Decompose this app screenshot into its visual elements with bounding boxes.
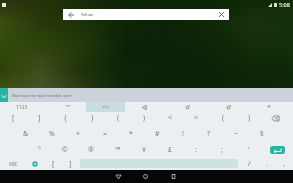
button[interactable]: ?	[196, 126, 222, 142]
staticText: ]	[38, 113, 41, 123]
button[interactable]: Home	[135, 170, 155, 183]
staticText: 5:08	[279, 1, 290, 8]
button[interactable]: >	[183, 110, 209, 126]
staticText: ?	[207, 129, 211, 139]
button[interactable]: )	[236, 110, 262, 126]
staticText: )	[143, 113, 146, 123]
button[interactable]: ~	[223, 126, 249, 142]
staticText: :	[195, 145, 197, 155]
button[interactable]: ™	[105, 142, 131, 158]
other: Clear	[219, 12, 224, 17]
button[interactable]: Settings	[25, 156, 45, 172]
button[interactable]: ¥	[131, 142, 157, 158]
staticText: '	[248, 145, 250, 155]
button[interactable]: Back	[108, 170, 128, 183]
button[interactable]: °	[26, 142, 52, 158]
button[interactable]: }	[79, 110, 105, 126]
button[interactable]: Backspace	[267, 111, 283, 125]
staticText: ¥	[142, 145, 147, 155]
staticText: (	[222, 113, 225, 123]
staticText: !	[182, 129, 184, 139]
button[interactable]: :	[183, 142, 209, 158]
button[interactable]: {	[52, 110, 78, 126]
button[interactable]: %	[39, 126, 65, 142]
staticText: *	[129, 129, 133, 139]
button[interactable]: Enter	[270, 146, 285, 154]
button[interactable]: #	[144, 126, 170, 142]
staticText: Yellow	[81, 12, 93, 17]
button[interactable]: Stickers	[126, 102, 162, 112]
button[interactable]: Voice input	[0, 88, 8, 102]
button[interactable]: +	[251, 102, 287, 112]
staticText: ©	[62, 145, 68, 155]
button[interactable]: ,	[276, 156, 292, 172]
button[interactable]: ;	[209, 142, 235, 158]
staticText: ABC	[9, 161, 18, 167]
staticText: ;	[221, 145, 223, 155]
button[interactable]: !	[170, 126, 196, 142]
button[interactable]: [	[0, 110, 26, 126]
staticText: >	[194, 113, 199, 123]
staticText: °	[38, 145, 41, 155]
staticText: +	[76, 129, 81, 139]
button[interactable]: )	[131, 110, 157, 126]
staticText: %	[49, 129, 55, 139]
button[interactable]: ©	[52, 142, 78, 158]
staticText: 1123	[16, 104, 28, 111]
staticText: }	[91, 113, 94, 123]
staticText: +	[267, 102, 272, 112]
button[interactable]: £	[157, 142, 183, 158]
button[interactable]: 1123	[4, 102, 40, 112]
staticText: “”	[66, 103, 71, 111]
button[interactable]: +	[65, 126, 91, 142]
staticText: (	[117, 113, 120, 123]
button[interactable]: .	[258, 156, 276, 172]
button[interactable]: §	[249, 126, 275, 142]
button[interactable]: &	[13, 126, 39, 142]
button[interactable]: Emoji	[210, 102, 246, 112]
button[interactable]: <>	[87, 102, 123, 112]
button[interactable]: <	[157, 110, 183, 126]
button[interactable]: Recent apps	[163, 170, 183, 183]
staticText: #	[155, 129, 160, 139]
staticText: ]	[69, 159, 72, 169]
button[interactable]: ]	[26, 110, 52, 126]
staticText: <>	[102, 103, 109, 111]
other: Back	[68, 12, 74, 18]
staticText: &	[23, 129, 29, 139]
staticText: =	[103, 129, 108, 139]
button[interactable]: *	[118, 126, 144, 142]
button[interactable]: ]	[61, 156, 79, 172]
button[interactable]: (	[105, 110, 131, 126]
staticText: .	[266, 159, 268, 169]
staticText: [	[12, 113, 15, 123]
staticText: Now close rear back rounded cover	[12, 93, 72, 98]
staticText: [	[52, 159, 55, 169]
staticText: ,	[283, 159, 285, 169]
staticText: ~	[234, 129, 239, 139]
button[interactable]: ABC	[2, 156, 24, 172]
button[interactable]: (	[210, 110, 236, 126]
staticText: §	[260, 129, 264, 139]
button[interactable]: ®	[78, 142, 104, 158]
button[interactable]: [	[44, 156, 62, 172]
staticText: {	[64, 113, 67, 123]
staticText: £	[168, 145, 173, 155]
button[interactable]: /	[240, 156, 258, 172]
button[interactable]: =	[92, 126, 118, 142]
button[interactable]: Back	[63, 9, 229, 20]
staticText: ®	[88, 145, 94, 155]
staticText: )	[248, 113, 251, 123]
staticText: ™	[115, 145, 121, 155]
button[interactable]: “”	[50, 102, 86, 112]
staticText: /	[248, 159, 251, 169]
button[interactable]: '	[236, 142, 262, 158]
button[interactable]: GIF	[169, 102, 205, 112]
staticText: <	[168, 113, 173, 123]
